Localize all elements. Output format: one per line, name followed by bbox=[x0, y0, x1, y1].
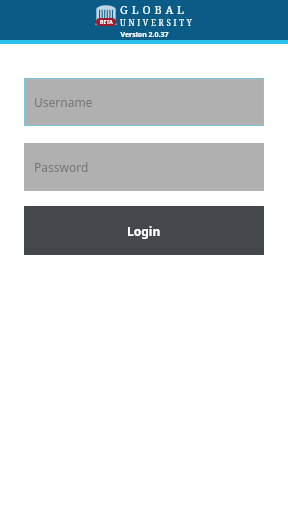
other: Global University logo bbox=[95, 4, 117, 26]
button[interactable]: Username bbox=[24, 78, 264, 126]
staticText: U N I V E R S I T Y bbox=[120, 17, 193, 28]
staticText: Login bbox=[127, 223, 161, 239]
staticText: G L O B A L bbox=[120, 2, 185, 17]
button[interactable]: Login bbox=[24, 206, 264, 255]
staticText: Version 2.0.37 bbox=[120, 30, 169, 40]
button[interactable]: Password bbox=[24, 143, 264, 191]
staticText: BETA bbox=[100, 19, 113, 26]
staticText: Username bbox=[34, 94, 93, 110]
staticText: Password bbox=[34, 159, 89, 175]
